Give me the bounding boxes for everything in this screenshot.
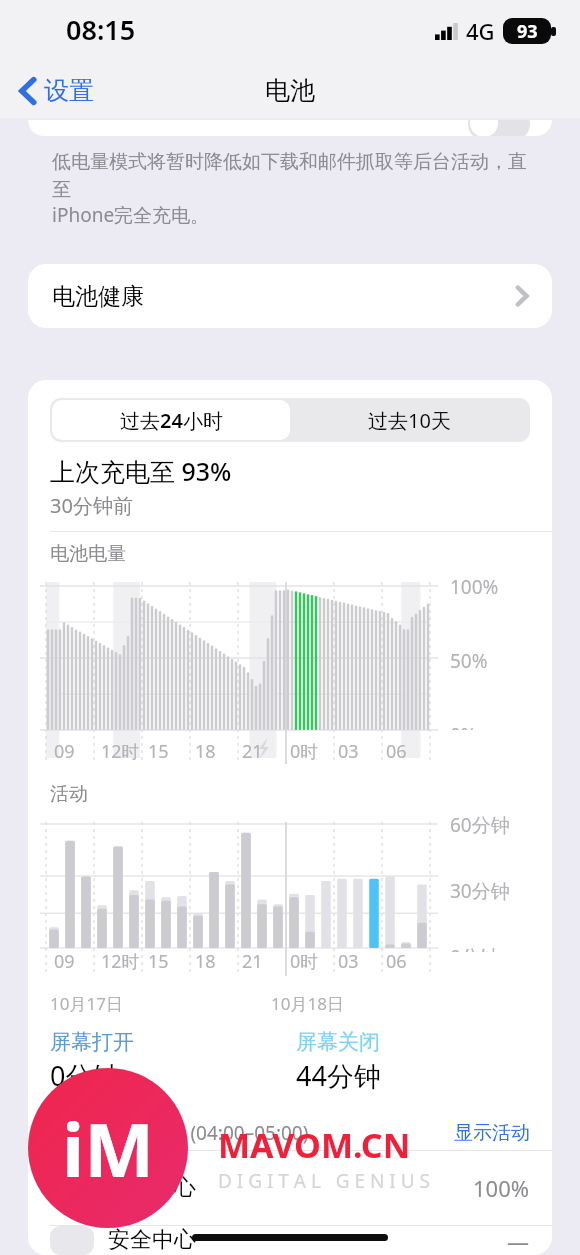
staticText: 03	[338, 739, 359, 764]
staticText: 50%	[450, 648, 488, 674]
staticText: 03	[338, 949, 359, 974]
staticText: 30分钟前	[50, 492, 133, 519]
button[interactable]: 过去10天	[290, 400, 528, 440]
staticText: 活动	[50, 782, 88, 806]
button[interactable]	[28, 120, 552, 136]
staticText: 06	[386, 949, 407, 974]
button[interactable]: 设置	[14, 69, 100, 112]
staticText: 过去10天	[368, 407, 451, 434]
button[interactable]: 控制中心	[28, 1151, 552, 1225]
staticText: 过去24小时	[120, 407, 223, 434]
staticText: 0分钟	[450, 944, 499, 952]
staticText: 电池	[265, 75, 315, 106]
staticText: 4G	[466, 16, 495, 46]
button[interactable]: 安全中心	[28, 1226, 552, 1255]
staticText: 30分钟	[450, 878, 510, 904]
button[interactable]: 显示活动	[454, 1121, 530, 1145]
staticText: 18	[195, 739, 216, 764]
staticText: 电池健康	[52, 282, 144, 311]
button[interactable]: 过去24小时	[52, 400, 290, 440]
staticText: —	[507, 1226, 530, 1255]
staticText: 0分钟	[50, 1057, 120, 1094]
staticText: 100%	[473, 1173, 530, 1203]
staticText: 显示活动	[454, 1121, 530, 1145]
staticText: 08:15	[66, 11, 136, 48]
staticText: 电池电量	[50, 542, 126, 566]
staticText: 15	[148, 739, 169, 764]
staticText: 93	[517, 19, 538, 44]
staticText: iPhone完全充电。	[52, 202, 210, 228]
staticText: 屏幕关闭	[296, 1029, 380, 1055]
staticText: 21	[242, 949, 263, 974]
staticText: 09	[54, 949, 75, 974]
staticText: 屏幕打开	[50, 1029, 134, 1055]
staticText: 09	[54, 739, 75, 764]
staticText: 100%	[450, 574, 499, 600]
staticText: 21	[242, 739, 263, 764]
staticText: D I G I T A L G E N I U S	[218, 1168, 431, 1194]
staticText: 控制中心	[108, 1174, 196, 1202]
staticText: 设置	[44, 75, 94, 106]
staticText: 15	[148, 949, 169, 974]
staticText: 12时	[101, 949, 140, 974]
staticText: 安全中心	[108, 1226, 196, 1254]
staticText: 0时	[290, 949, 319, 974]
staticText: iM	[62, 1098, 154, 1199]
staticText: 06	[386, 739, 407, 764]
staticText: App 的电池用量 (04:00–05:00)	[50, 1120, 309, 1146]
staticText: 60分钟	[450, 812, 510, 838]
staticText: 12时	[101, 739, 140, 764]
staticText: 10月17日	[50, 992, 123, 1015]
staticText: 18	[195, 949, 216, 974]
staticText: 上次充电至 93%	[50, 454, 232, 488]
staticText: MAVOM.CN	[218, 1122, 411, 1168]
staticText: 44分钟	[296, 1057, 381, 1094]
staticText: 10月18日	[271, 992, 344, 1015]
staticText: 低电量模式将暂时降低如下载和邮件抓取等后台活动，直至	[52, 150, 528, 202]
staticText: 0%	[450, 722, 477, 730]
button[interactable]: 电池健康	[28, 264, 552, 328]
staticText: 0时	[290, 739, 319, 764]
